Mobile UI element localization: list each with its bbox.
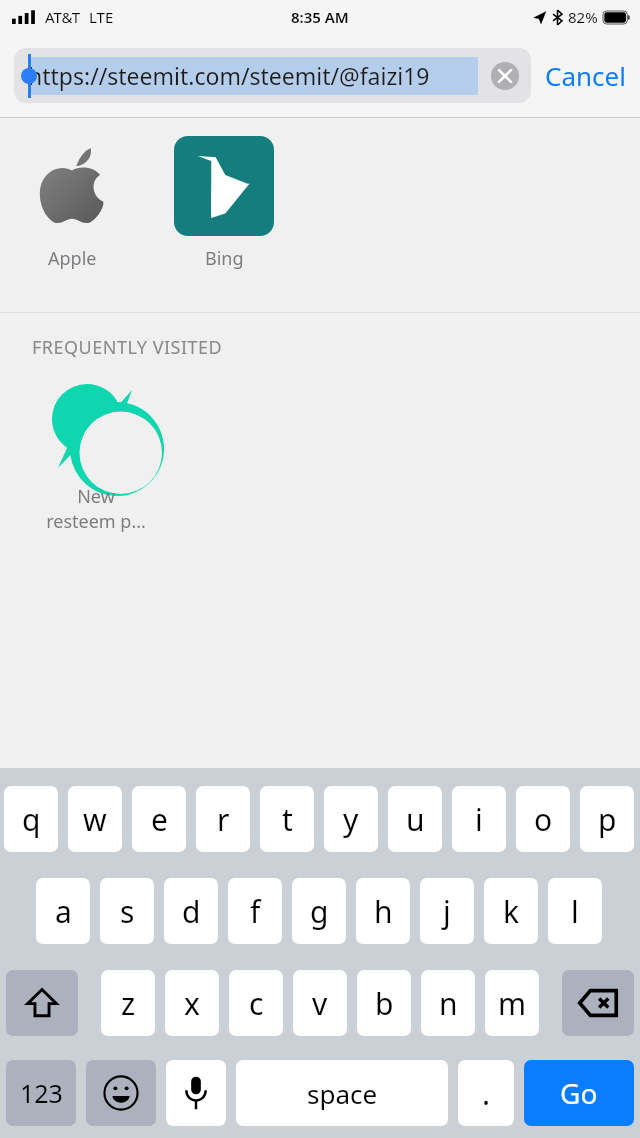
- button[interactable]: a: [36, 878, 90, 944]
- button[interactable]: b: [357, 970, 411, 1036]
- staticText: k: [503, 891, 520, 932]
- staticText: v: [312, 983, 328, 1024]
- button[interactable]: y: [324, 786, 378, 852]
- staticText: g: [310, 891, 329, 932]
- button[interactable]: Shift: [6, 970, 78, 1036]
- staticText: e: [151, 799, 168, 840]
- button[interactable]: Apple: [22, 136, 122, 271]
- button[interactable]: e: [132, 786, 186, 852]
- staticText: 82%: [568, 7, 598, 27]
- button[interactable]: h: [356, 878, 410, 944]
- button[interactable]: f: [228, 878, 282, 944]
- staticText: p: [598, 799, 617, 840]
- button[interactable]: x: [165, 970, 219, 1036]
- staticText: l: [571, 891, 579, 932]
- staticText: 123: [20, 1076, 63, 1110]
- staticText: y: [343, 799, 359, 840]
- button[interactable]: l: [548, 878, 602, 944]
- button[interactable]: Emoji: [86, 1060, 156, 1126]
- button[interactable]: w: [68, 786, 122, 852]
- staticText: z: [121, 983, 136, 1024]
- button[interactable]: i: [452, 786, 506, 852]
- staticText: r: [217, 799, 230, 840]
- staticText: h: [374, 891, 393, 932]
- button[interactable]: c: [229, 970, 283, 1036]
- staticText: Bing: [205, 246, 244, 271]
- button[interactable]: k: [484, 878, 538, 944]
- button[interactable]: j: [420, 878, 474, 944]
- staticText: t: [282, 799, 293, 840]
- button[interactable]: v: [293, 970, 347, 1036]
- button[interactable]: p: [580, 786, 634, 852]
- staticText: c: [249, 983, 264, 1024]
- button[interactable]: s: [100, 878, 154, 944]
- staticText: https://steemit.com/steemit/@faizi19: [28, 60, 430, 91]
- button[interactable]: Backspace: [562, 970, 634, 1036]
- staticText: d: [182, 891, 201, 932]
- button[interactable]: u: [388, 786, 442, 852]
- staticText: FREQUENTLY VISITED: [32, 335, 223, 360]
- button[interactable]: g: [292, 878, 346, 944]
- staticText: u: [406, 799, 425, 840]
- button[interactable]: 123: [6, 1060, 76, 1126]
- button[interactable]: o: [516, 786, 570, 852]
- staticText: Apple: [48, 246, 97, 271]
- button[interactable]: m: [485, 970, 539, 1036]
- staticText: a: [55, 891, 72, 932]
- staticText: o: [534, 799, 553, 840]
- button[interactable]: Go: [524, 1060, 634, 1126]
- button[interactable]: New resteem p...: [46, 378, 146, 534]
- button[interactable]: t: [260, 786, 314, 852]
- staticText: i: [475, 799, 483, 840]
- staticText: AT&T: [45, 7, 80, 27]
- staticText: n: [439, 983, 458, 1024]
- button[interactable]: https://steemit.com/steemit/@faizi19: [14, 48, 531, 103]
- staticText: Go: [560, 1074, 598, 1112]
- button[interactable]: Dictation: [166, 1060, 226, 1126]
- button[interactable]: Cancel: [545, 58, 626, 93]
- button[interactable]: .: [458, 1060, 514, 1126]
- staticText: q: [22, 799, 41, 840]
- button[interactable]: Bing: [174, 136, 274, 271]
- button[interactable]: z: [101, 970, 155, 1036]
- staticText: b: [375, 983, 394, 1024]
- staticText: 8:35 AM: [291, 7, 349, 27]
- staticText: j: [443, 891, 451, 932]
- staticText: space: [307, 1076, 378, 1111]
- button[interactable]: Clear text: [491, 62, 519, 90]
- staticText: w: [83, 799, 107, 840]
- button[interactable]: n: [421, 970, 475, 1036]
- button[interactable]: r: [196, 786, 250, 852]
- staticText: f: [250, 891, 261, 932]
- staticText: LTE: [89, 7, 114, 27]
- staticText: New resteem p...: [46, 484, 146, 534]
- staticText: Cancel: [545, 58, 626, 93]
- button[interactable]: space: [236, 1060, 448, 1126]
- staticText: .: [482, 1073, 491, 1114]
- staticText: s: [120, 891, 135, 932]
- staticText: m: [498, 983, 527, 1024]
- staticText: x: [184, 983, 200, 1024]
- button[interactable]: q: [4, 786, 58, 852]
- button[interactable]: d: [164, 878, 218, 944]
